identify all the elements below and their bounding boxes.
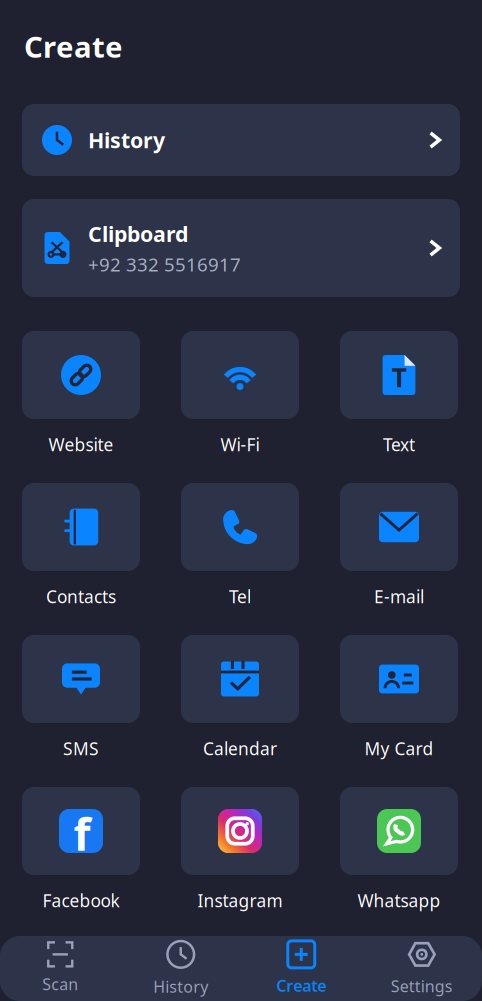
staticText: History xyxy=(88,126,165,154)
staticText: Contacts xyxy=(46,585,116,608)
button[interactable]: Tel xyxy=(181,483,299,608)
staticText: +92 332 5516917 xyxy=(88,252,241,277)
staticText: Facebook xyxy=(42,889,119,912)
button[interactable]: Contacts xyxy=(22,483,140,608)
staticText: Scan xyxy=(42,973,78,995)
button[interactable]: f xyxy=(22,787,140,912)
staticText: Create xyxy=(276,975,326,996)
staticText: Instagram xyxy=(197,889,282,912)
staticText: Wi-Fi xyxy=(220,433,259,456)
button[interactable]: Calendar xyxy=(181,635,299,760)
staticText: T xyxy=(391,359,406,395)
staticText: SMS xyxy=(63,737,99,760)
button[interactable]: Whatsapp xyxy=(340,787,458,912)
button[interactable]: T xyxy=(340,331,458,456)
staticText: Create xyxy=(24,27,123,66)
staticText: Whatsapp xyxy=(357,889,440,912)
staticText: My Card xyxy=(364,737,433,760)
button[interactable]: E-mail xyxy=(340,483,458,608)
staticText: Text xyxy=(383,433,415,456)
button[interactable]: SMS xyxy=(22,635,140,760)
staticText: Tel xyxy=(229,585,251,608)
button[interactable]: History xyxy=(120,926,241,1001)
button[interactable]: Create xyxy=(241,927,361,1001)
staticText: Website xyxy=(48,433,113,456)
button[interactable]: Clipboard xyxy=(22,199,460,297)
button[interactable]: Website xyxy=(22,331,140,456)
button[interactable]: History xyxy=(22,104,460,176)
staticText: E-mail xyxy=(374,585,424,608)
button[interactable]: Settings xyxy=(361,926,482,1001)
button[interactable]: Instagram xyxy=(181,787,299,912)
staticText: Settings xyxy=(391,975,453,997)
button[interactable]: Wi-Fi xyxy=(181,331,299,456)
button[interactable]: Scan xyxy=(0,928,120,1001)
staticText: History xyxy=(153,976,208,997)
button[interactable]: My Card xyxy=(340,635,458,760)
staticText: f xyxy=(73,804,90,863)
staticText: Calendar xyxy=(203,737,277,760)
staticText: Clipboard xyxy=(88,219,188,248)
